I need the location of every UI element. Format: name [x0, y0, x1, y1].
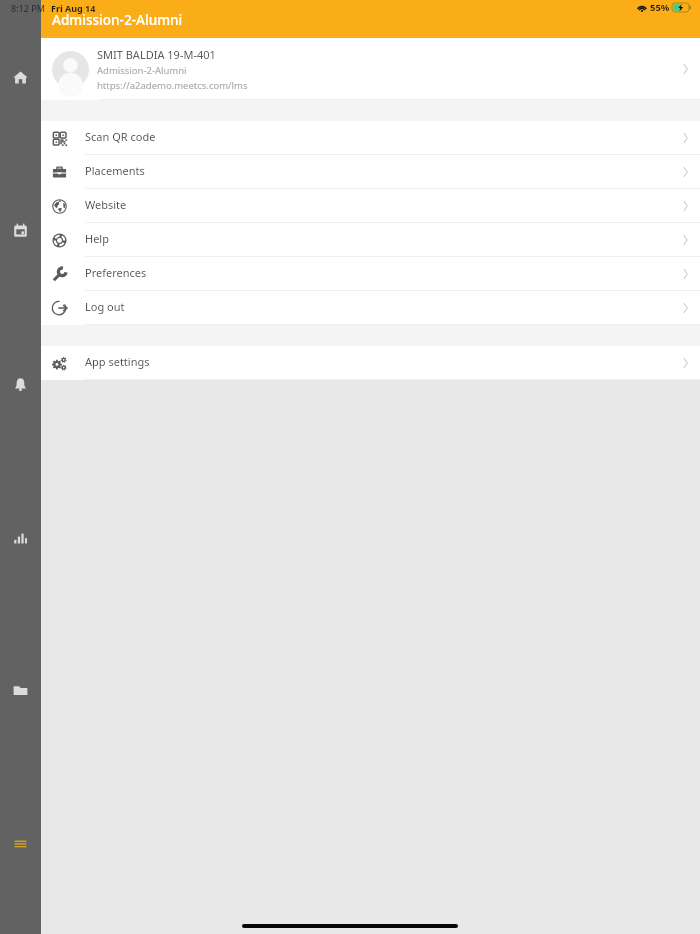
staticText: 8:12 PM — [11, 2, 45, 14]
staticText: Scan QR code — [85, 129, 156, 144]
button[interactable]: Scan QR code — [41, 121, 700, 155]
staticText: Help — [85, 231, 109, 246]
staticText: https://a2ademo.meetcs.com/lms — [97, 79, 248, 92]
staticText: Log out — [85, 299, 125, 314]
button[interactable]: Statistics — [0, 521, 41, 553]
staticText: Fri Aug 14 — [51, 2, 96, 14]
button[interactable]: Help — [41, 223, 700, 257]
staticText: Placements — [85, 163, 145, 178]
staticText: Admission-2-Alumni — [52, 10, 183, 29]
staticText: Website — [85, 197, 127, 212]
button[interactable]: Log out — [41, 291, 700, 325]
button[interactable]: Placements — [41, 155, 700, 189]
button[interactable]: Menu — [0, 827, 41, 859]
button[interactable]: Notifications — [0, 368, 41, 400]
button[interactable]: SMIT BALDIA 19-M-401 — [41, 38, 700, 100]
button[interactable]: Calendar — [0, 214, 41, 246]
button[interactable]: Website — [41, 189, 700, 223]
button[interactable]: App settings — [41, 346, 700, 380]
button[interactable]: Home — [0, 61, 41, 93]
button[interactable]: Preferences — [41, 257, 700, 291]
staticText: 55% — [650, 1, 670, 14]
staticText: SMIT BALDIA 19-M-401 — [97, 47, 216, 62]
staticText: Preferences — [85, 265, 147, 280]
staticText: Admission-2-Alumni — [97, 64, 187, 77]
staticText: App settings — [85, 354, 150, 369]
button[interactable]: Files — [0, 674, 41, 706]
